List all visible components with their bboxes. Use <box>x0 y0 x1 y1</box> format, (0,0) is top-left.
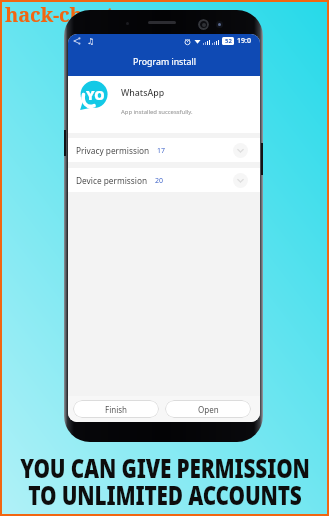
staticText: App installed successfully. <box>121 108 193 116</box>
staticText: 17 <box>157 146 166 156</box>
button[interactable]: Device permission <box>68 168 260 192</box>
staticText: WhatsApp <box>121 87 165 99</box>
staticText: Device permission <box>76 175 148 186</box>
staticText: 52 <box>225 37 232 45</box>
staticText: Privacy permission <box>76 145 150 156</box>
staticText: 19:0 <box>237 36 251 46</box>
staticText: ♫ <box>87 37 95 46</box>
button[interactable]: Open <box>165 400 251 418</box>
staticText: YO <box>86 86 105 104</box>
staticText: hack-cheat.org <box>5 1 153 28</box>
staticText: TO UNLIMITED ACCOUNTS <box>0 476 329 513</box>
button[interactable]: Finish <box>73 400 159 418</box>
staticText: YOU CAN GIVE PERMISSION <box>0 449 329 486</box>
staticText: Program install <box>133 56 196 68</box>
button[interactable]: Privacy permission <box>68 138 260 162</box>
staticText: 20 <box>155 176 164 186</box>
staticText: Open <box>198 404 219 415</box>
other: Expand Device permission <box>233 173 248 188</box>
other: Expand Privacy permission <box>233 143 248 158</box>
staticText: Finish <box>105 404 127 415</box>
